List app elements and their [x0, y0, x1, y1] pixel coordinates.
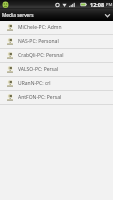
button[interactable]: VALSO-PC: Persal	[0, 63, 113, 76]
staticText: 12:08	[90, 1, 105, 8]
button[interactable]: NAS-PC: Personal	[0, 35, 113, 48]
button[interactable]: MiChele-PC: Admn	[0, 21, 113, 34]
staticText: URanN-PC: crl	[18, 80, 51, 87]
staticText: MiChele-PC: Admn	[18, 24, 62, 31]
button[interactable]: CrabQli-PC: Persnal	[0, 49, 113, 62]
staticText: NAS-PC: Personal	[18, 38, 59, 45]
button[interactable]: Media servers	[0, 9, 113, 21]
other: Expand	[104, 12, 111, 19]
staticText: AntFON-PC: Persal	[18, 94, 62, 101]
staticText: VALSO-PC: Persal	[18, 66, 59, 73]
button[interactable]: URanN-PC: crl	[0, 77, 113, 90]
button[interactable]: AntFON-PC: Persal	[0, 91, 113, 104]
staticText: PM	[106, 2, 113, 8]
staticText: Media servers	[2, 12, 34, 19]
staticText: CrabQli-PC: Persnal	[18, 52, 64, 59]
